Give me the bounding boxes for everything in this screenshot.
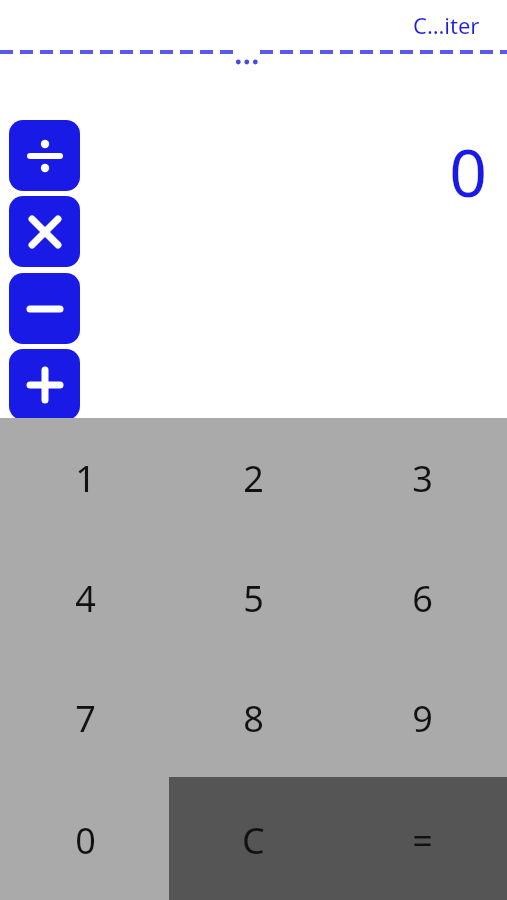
- button[interactable]: 1: [29, 448, 141, 508]
- button[interactable]: 0: [29, 810, 141, 870]
- button[interactable]: 6: [366, 568, 478, 628]
- button[interactable]: Divide: [9, 120, 80, 191]
- staticText: 2: [243, 454, 264, 503]
- staticText: 0: [75, 816, 96, 865]
- staticText: 1: [75, 454, 96, 503]
- staticText: 0: [449, 126, 487, 216]
- staticText: C…iter: [413, 10, 480, 40]
- staticText: 4: [75, 574, 96, 623]
- staticText: 7: [75, 694, 96, 743]
- button[interactable]: 5: [197, 568, 309, 628]
- button[interactable]: Multiply: [9, 196, 80, 267]
- staticText: 6: [412, 574, 433, 623]
- button[interactable]: Subtract: [9, 273, 80, 344]
- button[interactable]: C: [197, 810, 309, 870]
- button[interactable]: 2: [197, 448, 309, 508]
- button[interactable]: C…iter: [396, 6, 496, 44]
- staticText: 5: [243, 574, 264, 623]
- button[interactable]: 7: [29, 688, 141, 748]
- staticText: 8: [243, 694, 264, 743]
- staticText: 9: [412, 694, 433, 743]
- button[interactable]: Add: [9, 349, 80, 420]
- button[interactable]: 9: [366, 688, 478, 748]
- button[interactable]: =: [366, 810, 478, 870]
- button[interactable]: 8: [197, 688, 309, 748]
- staticText: C: [242, 816, 265, 865]
- button[interactable]: 4: [29, 568, 141, 628]
- staticText: =: [412, 816, 433, 865]
- staticText: 3: [412, 454, 433, 503]
- button[interactable]: 3: [366, 448, 478, 508]
